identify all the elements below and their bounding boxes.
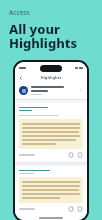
button[interactable]: More options bbox=[19, 85, 83, 96]
button[interactable]: More options bbox=[78, 88, 83, 93]
button[interactable]: Back bbox=[18, 75, 24, 81]
staticText: All your Highlights bbox=[9, 20, 78, 52]
button[interactable]: Copy highlight bbox=[68, 206, 74, 212]
button[interactable]: Copy highlight bbox=[68, 152, 74, 158]
staticText: Access bbox=[9, 8, 30, 17]
button[interactable]: Delete highlight bbox=[77, 152, 83, 158]
button[interactable]: Delete highlight bbox=[77, 206, 83, 212]
staticText: Highlights bbox=[40, 75, 62, 81]
button[interactable] bbox=[22, 180, 80, 200]
button[interactable] bbox=[22, 122, 80, 146]
